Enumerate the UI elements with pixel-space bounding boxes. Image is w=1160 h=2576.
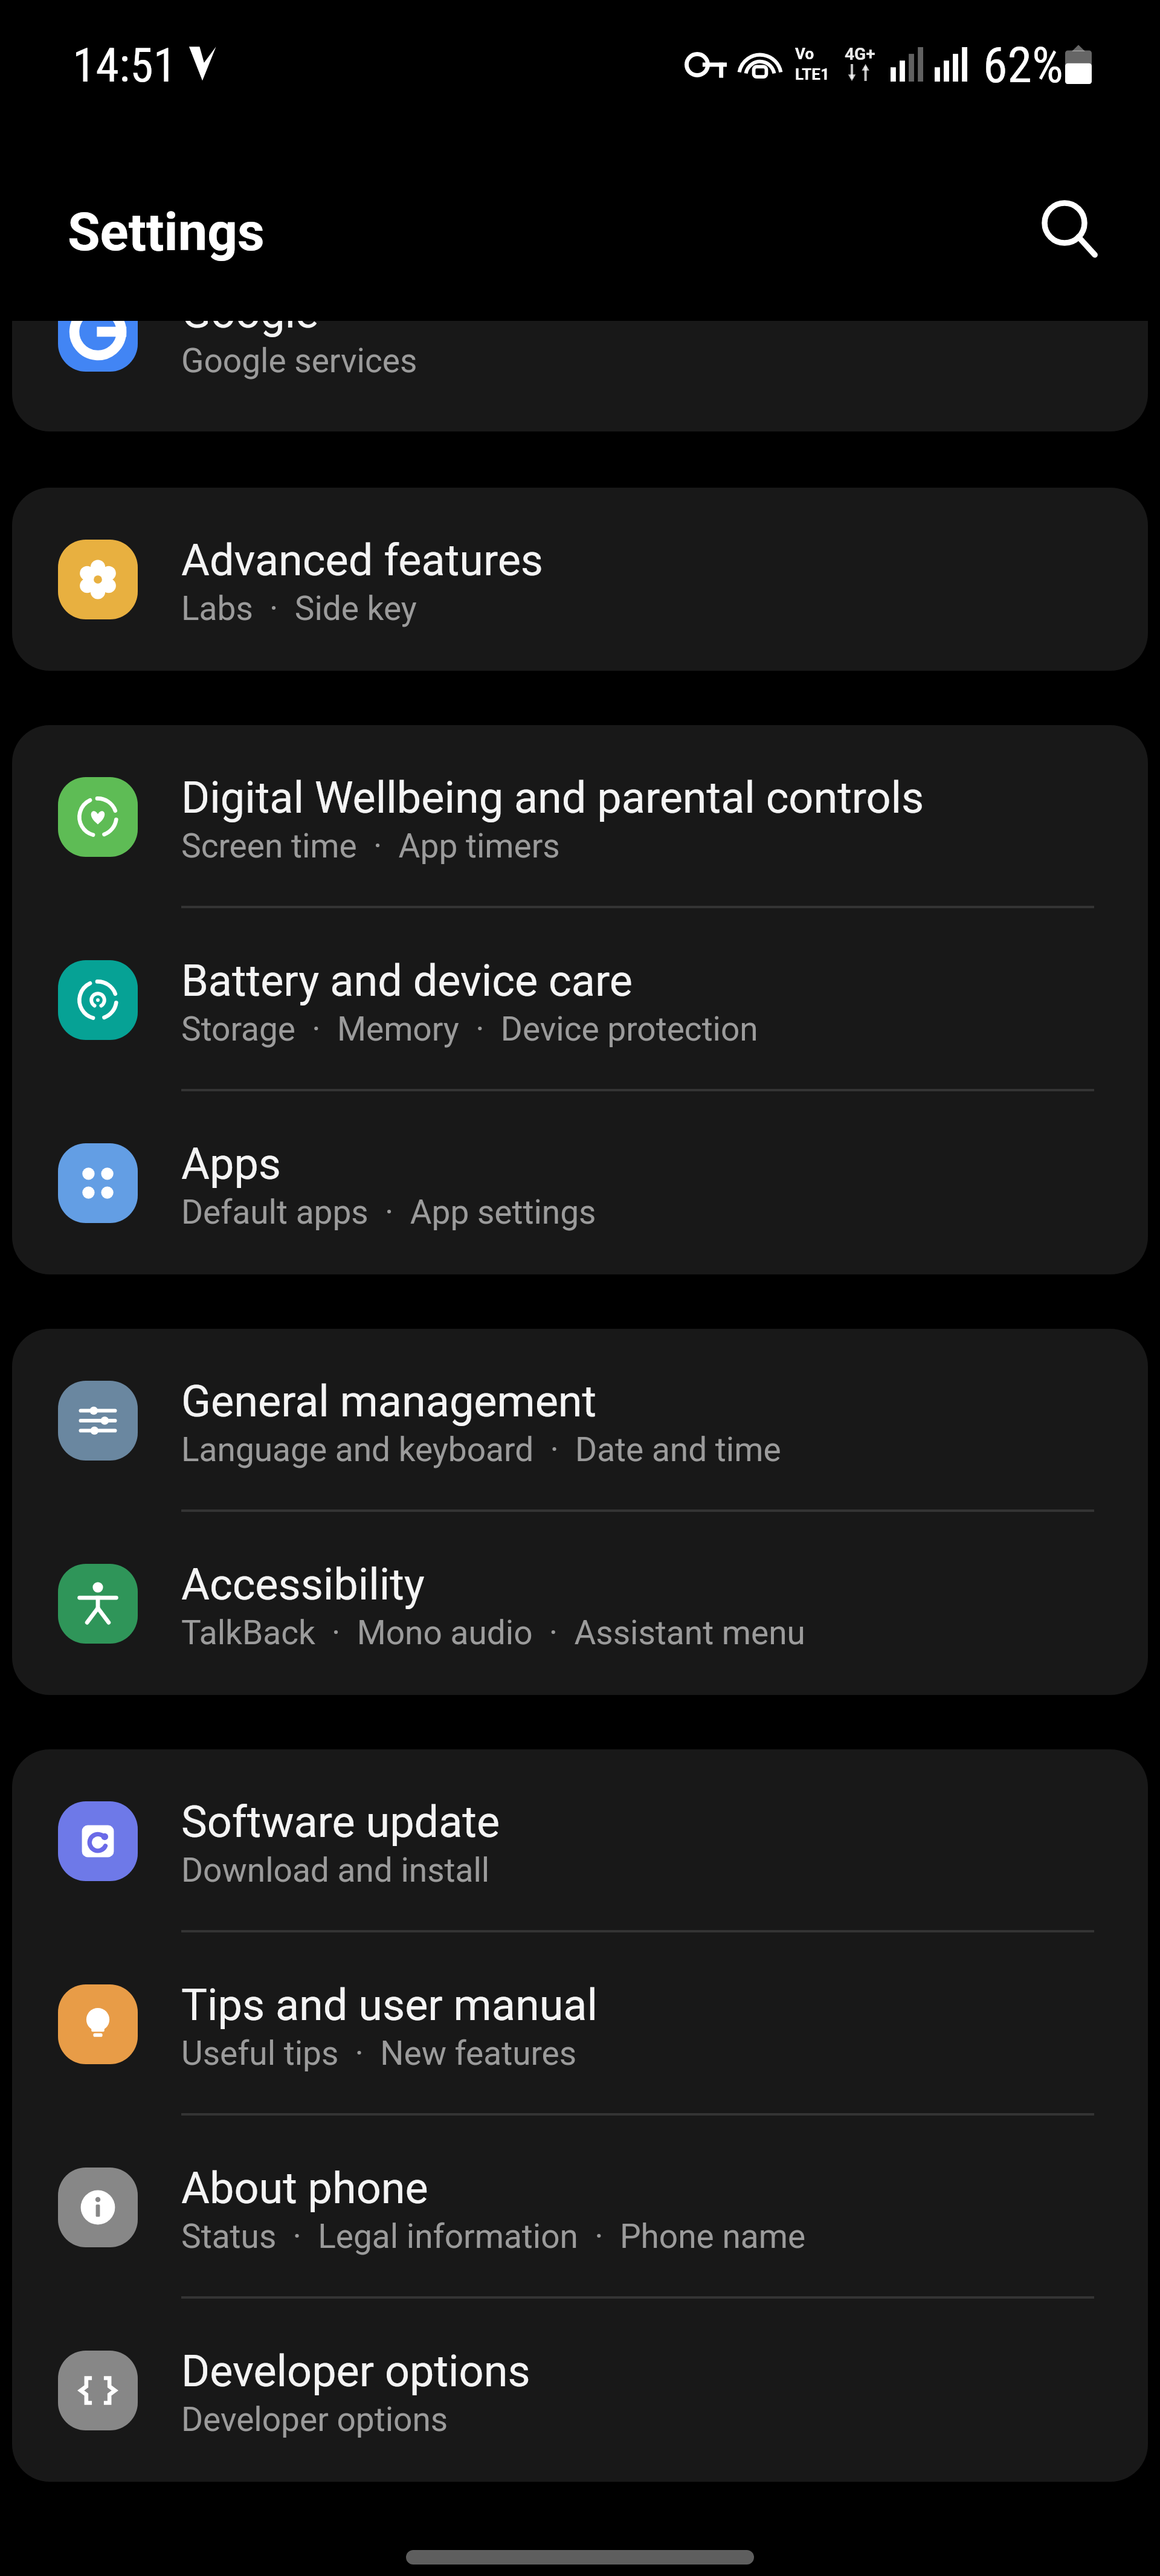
- button[interactable]: Developer options: [12, 2299, 1148, 2482]
- staticText: 62%: [983, 36, 1063, 94]
- staticText: 4G+: [845, 44, 875, 64]
- staticText: Vo: [795, 45, 814, 63]
- staticText: Status · Legal information · Phone name: [181, 2217, 806, 2256]
- staticText: Developer options: [181, 2400, 448, 2439]
- button[interactable]: Battery and device care: [12, 908, 1148, 1091]
- staticText: Settings: [68, 201, 265, 263]
- button[interactable]: Search: [1008, 166, 1121, 280]
- button[interactable]: Advanced features: [12, 488, 1148, 671]
- button[interactable]: Software update: [12, 1749, 1148, 1932]
- staticText: Language and keyboard · Date and time: [181, 1430, 781, 1469]
- staticText: Useful tips · New features: [181, 2034, 577, 2073]
- staticText: Google services: [181, 341, 417, 380]
- button[interactable]: Apps: [12, 1091, 1148, 1274]
- button[interactable]: About phone: [12, 2116, 1148, 2299]
- staticText: Apps: [181, 1138, 281, 1189]
- staticText: Download and install: [181, 1851, 490, 1890]
- staticText: Advanced features: [181, 535, 544, 586]
- staticText: Software update: [181, 1796, 500, 1847]
- staticText: Digital Wellbeing and parental controls: [181, 772, 924, 823]
- button[interactable]: Digital Wellbeing and parental controls: [12, 725, 1148, 908]
- button[interactable]: General management: [12, 1329, 1148, 1512]
- staticText: Tips and user manual: [181, 1980, 598, 2030]
- staticText: Labs · Side key: [181, 589, 417, 628]
- staticText: TalkBack · Mono audio · Assistant menu: [181, 1613, 805, 1652]
- staticText: Developer options: [181, 2346, 530, 2397]
- button[interactable]: Google: [12, 321, 1148, 431]
- staticText: LTE1: [795, 65, 830, 83]
- staticText: Default apps · App settings: [181, 1193, 596, 1232]
- button[interactable]: Tips and user manual: [12, 1932, 1148, 2116]
- staticText: Battery and device care: [181, 955, 633, 1006]
- button[interactable]: Accessibility: [12, 1512, 1148, 1695]
- staticText: Google: [181, 321, 319, 338]
- staticText: Screen time · App timers: [181, 827, 560, 865]
- staticText: 14:51: [72, 38, 177, 93]
- staticText: About phone: [181, 2163, 428, 2213]
- staticText: Storage · Memory · Device protection: [181, 1010, 758, 1048]
- staticText: General management: [181, 1376, 597, 1427]
- staticText: Accessibility: [181, 1559, 425, 1610]
